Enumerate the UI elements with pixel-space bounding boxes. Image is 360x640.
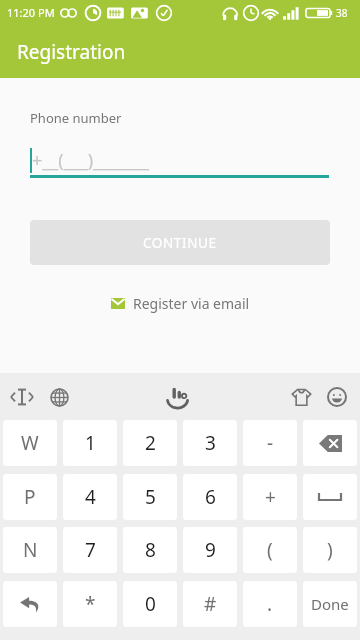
button[interactable]: 4 (63, 474, 117, 520)
button[interactable]: Enter (3, 581, 57, 627)
staticText: 1 (85, 430, 96, 456)
staticText: Register via email (133, 294, 250, 313)
staticText: 0 (145, 591, 156, 617)
button[interactable]: Keyboard settings (162, 381, 194, 413)
button[interactable]: - (243, 420, 297, 466)
staticText: 9 (205, 537, 216, 563)
staticText: 38 (336, 6, 348, 20)
button[interactable]: 8 (123, 527, 177, 573)
button[interactable]: 7 (63, 527, 117, 573)
staticText: W (21, 430, 39, 456)
staticText: # (204, 591, 217, 617)
button[interactable]: Emoji (322, 382, 352, 412)
staticText: 7 (85, 537, 96, 563)
button[interactable]: 5 (123, 474, 177, 520)
staticText: +__(___)_______ (32, 148, 149, 173)
button[interactable]: W (3, 420, 57, 466)
staticText: ( (267, 537, 273, 563)
button[interactable]: N (3, 527, 57, 573)
button[interactable]: CONTINUE (30, 220, 330, 265)
staticText: * (85, 591, 96, 617)
button[interactable]: 0 (123, 581, 177, 627)
button[interactable]: * (63, 581, 117, 627)
button[interactable]: Space (303, 474, 357, 520)
button[interactable]: 3 (183, 420, 237, 466)
staticText: CONTINUE (143, 234, 217, 252)
staticText: 2 (145, 430, 156, 456)
staticText: 4 (85, 484, 96, 510)
button[interactable]: ( (243, 527, 297, 573)
staticText: 6 (205, 484, 216, 510)
staticText: 3 (205, 430, 216, 456)
button[interactable]: 2 (123, 420, 177, 466)
button[interactable]: Register via email (0, 294, 360, 313)
button[interactable]: . (243, 581, 297, 627)
button[interactable]: Move cursor (7, 382, 37, 412)
staticText: 5 (145, 484, 156, 510)
staticText: Registration (17, 39, 126, 65)
button[interactable]: Theme (286, 382, 316, 412)
button[interactable]: + (243, 474, 297, 520)
staticText: Phone number (30, 109, 122, 127)
staticText: 11:20 PM (7, 5, 55, 20)
staticText: N (23, 537, 38, 563)
button[interactable]: Backspace (303, 420, 357, 466)
staticText: 8 (145, 537, 156, 563)
button[interactable]: 9 (183, 527, 237, 573)
staticText: ) (327, 537, 333, 563)
staticText: . (267, 591, 273, 617)
button[interactable]: ) (303, 527, 357, 573)
button[interactable]: 1 (63, 420, 117, 466)
button[interactable]: Change language (44, 382, 74, 412)
staticText: + (265, 484, 276, 510)
staticText: Done (311, 594, 349, 614)
button[interactable]: 6 (183, 474, 237, 520)
button[interactable]: # (183, 581, 237, 627)
button[interactable]: Done (303, 581, 357, 627)
staticText: P (24, 484, 36, 510)
button[interactable]: P (3, 474, 57, 520)
staticText: - (267, 430, 274, 456)
